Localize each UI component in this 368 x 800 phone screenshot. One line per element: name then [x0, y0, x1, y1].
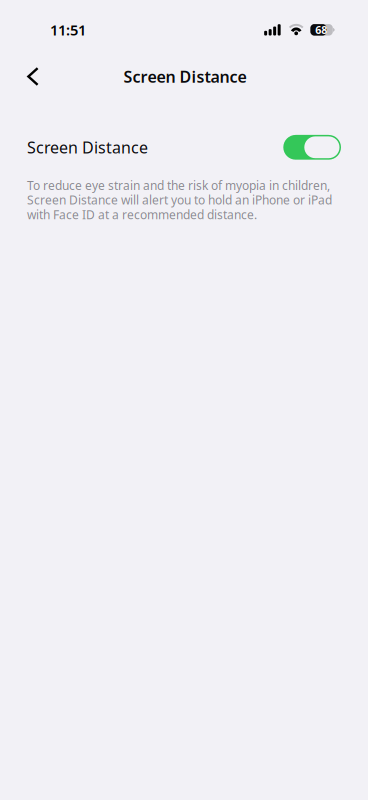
staticText: Screen Distance	[123, 66, 246, 87]
button[interactable]: Screen Distance	[0, 125, 368, 169]
staticText: 11:51	[50, 20, 86, 40]
staticText: Screen Distance	[27, 137, 148, 158]
button[interactable]: Back	[11, 56, 55, 96]
staticText: To reduce eye strain and the risk of myo…	[27, 177, 332, 222]
staticText: 68	[315, 23, 327, 37]
